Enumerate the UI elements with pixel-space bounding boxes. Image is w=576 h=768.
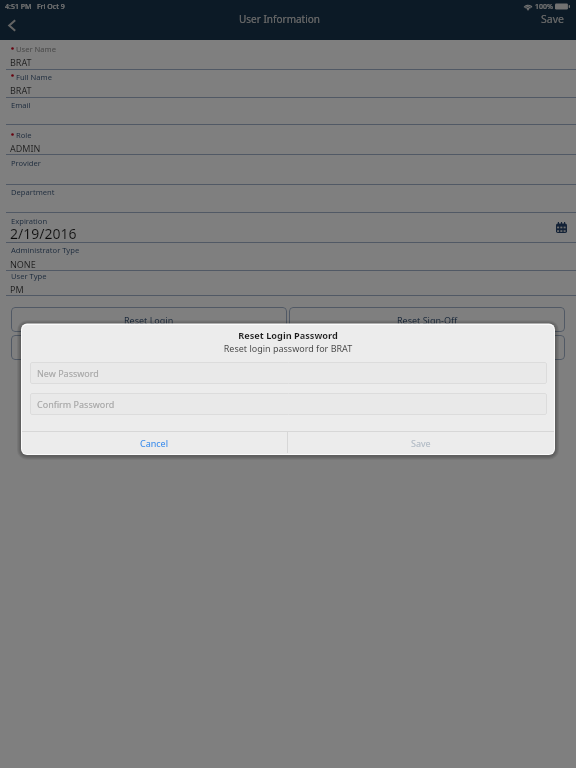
button[interactable]	[0, 97, 576, 125]
staticText: Reset Login	[124, 314, 174, 326]
staticText: ADMIN	[10, 142, 41, 154]
staticText: Save	[541, 12, 564, 26]
button[interactable]: Reset Password	[11, 335, 287, 360]
staticText: Reset Login Password	[22, 329, 554, 342]
staticText: Reset login password for BRAT	[22, 342, 554, 354]
staticText: Save	[411, 437, 431, 449]
staticText: Email	[11, 100, 31, 110]
staticText: 4:51 PM Fri Oct 9	[5, 2, 65, 12]
staticText: User Information	[239, 12, 321, 26]
button[interactable]	[0, 69, 576, 98]
staticText: Reset Sign-Off	[397, 314, 458, 326]
staticText: BRAT	[10, 56, 32, 68]
staticText: Expiration	[11, 216, 48, 226]
button[interactable]	[0, 154, 576, 185]
button[interactable]: Confirm Password	[30, 393, 547, 415]
staticText: Cancel	[140, 437, 169, 449]
button[interactable]: Save	[532, 9, 572, 29]
button[interactable]	[0, 270, 576, 297]
button[interactable]: Reset Login	[11, 307, 287, 332]
staticText: New Password	[37, 367, 99, 379]
button[interactable]	[0, 40, 576, 70]
staticText: NONE	[10, 258, 36, 270]
staticText: User Type	[11, 271, 47, 281]
staticText: User Name	[16, 44, 56, 54]
staticText: BRAT	[10, 84, 32, 96]
button[interactable]	[0, 184, 576, 213]
staticText: Department	[11, 187, 55, 197]
staticText: Role	[16, 130, 32, 140]
button[interactable]: New Password	[30, 362, 547, 384]
staticText: PM	[10, 283, 24, 295]
button[interactable]: Back	[0, 14, 24, 36]
button[interactable]	[0, 242, 576, 271]
staticText: Full Name	[16, 72, 52, 82]
button[interactable]	[0, 124, 576, 155]
staticText: Provider	[11, 158, 41, 168]
button[interactable]: Cancel	[22, 432, 287, 453]
button[interactable]: Delete User	[289, 335, 565, 360]
staticText: 100%	[535, 2, 553, 12]
staticText: 2/19/2016	[10, 224, 77, 243]
button[interactable]	[0, 212, 576, 243]
button[interactable]: Save	[288, 432, 554, 453]
button[interactable]: Reset Sign-Off	[289, 307, 565, 332]
staticText: Confirm Password	[37, 398, 115, 410]
staticText: Administrator Type	[11, 245, 80, 255]
